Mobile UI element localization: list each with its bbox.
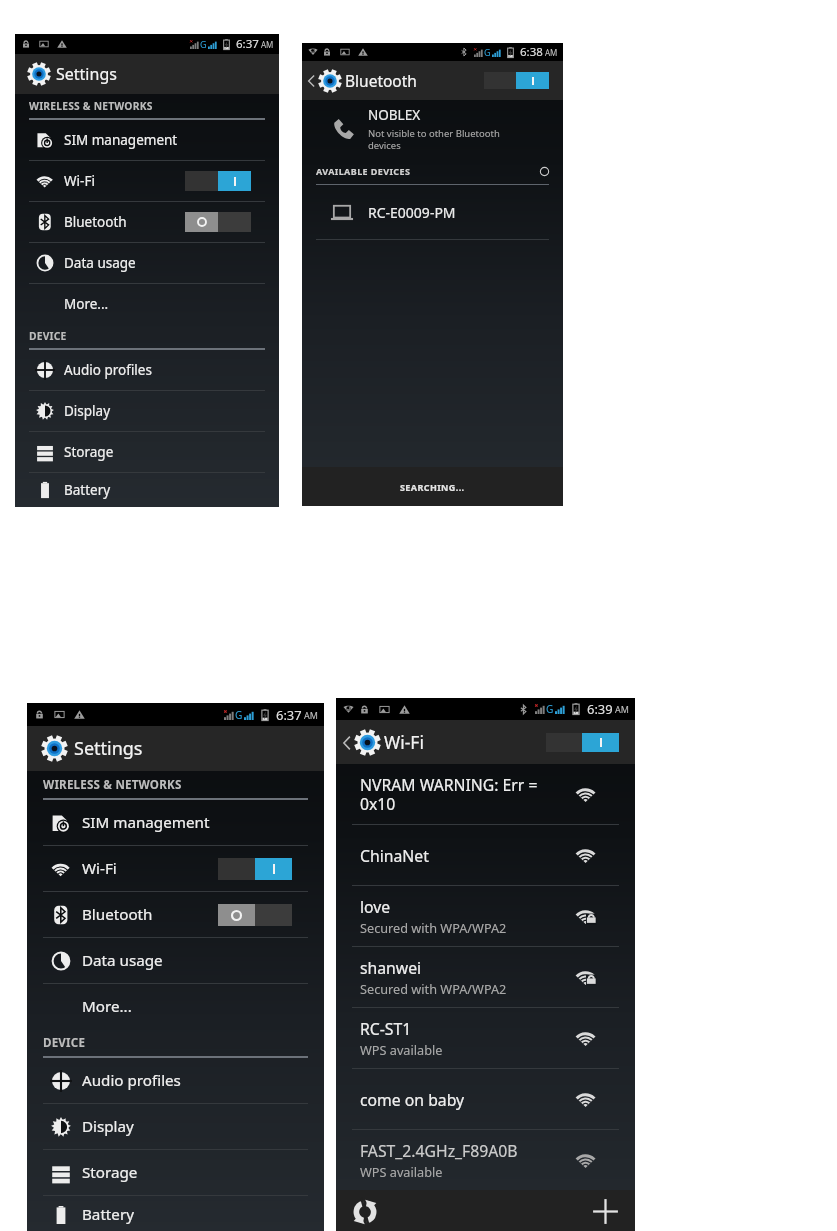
staticText: Not visible to other Bluetooth devices <box>368 127 500 152</box>
button[interactable]: Bluetooth off <box>185 212 251 232</box>
staticText: come on baby <box>360 1089 465 1110</box>
button[interactable]: Settings <box>27 54 279 94</box>
button[interactable]: FAST_2.4GHz_F89A0B <box>360 1130 597 1190</box>
button[interactable]: Audio profiles <box>27 1058 324 1103</box>
button[interactable]: shanwei <box>360 947 597 1007</box>
staticText: G <box>546 702 554 716</box>
staticText: G <box>235 708 243 722</box>
staticText: Wi-Fi <box>384 730 424 754</box>
button[interactable]: RC-ST1 <box>360 1008 597 1068</box>
staticText: Audio profiles <box>82 1070 181 1091</box>
staticText: Data usage <box>82 950 163 971</box>
button[interactable]: Wi-Fi toggle <box>546 733 619 752</box>
button[interactable]: Settings <box>41 726 324 771</box>
staticText: Audio profiles <box>64 361 152 379</box>
staticText: shanwei <box>360 957 422 978</box>
button[interactable]: Bluetooth <box>15 202 279 242</box>
staticText: SIM management <box>64 131 178 149</box>
staticText: ChinaNet <box>360 845 429 866</box>
staticText: G <box>200 38 207 50</box>
staticText: SIM management <box>82 812 210 833</box>
staticText: Battery <box>64 481 111 499</box>
staticText: WIRELESS & NETWORKS <box>29 99 153 113</box>
button[interactable]: NOBLEX <box>302 100 563 158</box>
staticText: 6:39 <box>587 700 613 718</box>
staticText: Display <box>82 1116 134 1137</box>
button[interactable]: Data usage <box>15 243 279 283</box>
staticText: More... <box>64 295 109 313</box>
button[interactable]: Back <box>306 69 342 93</box>
button[interactable]: Refresh device list <box>540 167 549 176</box>
staticText: NVRAM WARNING: Err = 0x10 <box>360 774 538 815</box>
button[interactable]: Display <box>15 391 279 431</box>
staticText: Storage <box>64 443 114 461</box>
staticText: Battery <box>82 1204 134 1225</box>
button[interactable]: SIM management <box>27 800 324 845</box>
button[interactable]: love <box>360 886 597 946</box>
button[interactable]: Battery <box>15 473 279 507</box>
staticText: RC-ST1 <box>360 1018 412 1039</box>
staticText: 6:38 <box>520 44 543 60</box>
button[interactable]: WPS push button <box>351 1198 379 1226</box>
button[interactable]: Wi-Fi on <box>185 171 251 191</box>
button[interactable]: ChinaNet <box>360 825 597 885</box>
button[interactable]: Storage <box>15 432 279 472</box>
staticText: AM <box>615 703 629 715</box>
staticText: Secured with WPA/WPA2 <box>360 919 507 936</box>
staticText: Wi-Fi <box>64 172 95 190</box>
button[interactable]: Display <box>27 1104 324 1149</box>
button[interactable]: Battery <box>27 1196 324 1231</box>
staticText: FAST_2.4GHz_F89A0B <box>360 1140 518 1161</box>
staticText: Data usage <box>64 254 136 272</box>
button[interactable]: Storage <box>27 1150 324 1195</box>
staticText: NOBLEX <box>368 106 421 124</box>
staticText: AM <box>261 39 274 50</box>
staticText: DEVICE <box>43 1035 86 1051</box>
button[interactable]: Back <box>341 729 381 756</box>
staticText: G <box>484 46 491 58</box>
staticText: Settings <box>56 63 117 85</box>
staticText: 6:37 <box>236 36 259 52</box>
button[interactable]: Wi-Fi <box>15 161 279 201</box>
staticText: love <box>360 896 391 917</box>
button[interactable]: Wi-Fi on <box>218 858 292 880</box>
staticText: AVAILABLE DEVICES <box>316 165 411 177</box>
staticText: SEARCHING... <box>400 481 465 493</box>
button[interactable]: More... <box>27 984 324 1029</box>
button[interactable]: RC-E0009-PM <box>302 185 563 239</box>
staticText: WIRELESS & NETWORKS <box>43 777 182 793</box>
button[interactable]: Data usage <box>27 938 324 983</box>
button[interactable]: Audio profiles <box>15 350 279 390</box>
staticText: DEVICE <box>29 329 67 343</box>
button[interactable]: Bluetooth toggle <box>484 72 549 89</box>
staticText: Display <box>64 402 111 420</box>
staticText: Secured with WPA/WPA2 <box>360 980 507 997</box>
staticText: More... <box>82 996 132 1017</box>
staticText: Wi-Fi <box>82 858 117 879</box>
staticText: Bluetooth <box>345 70 417 91</box>
staticText: Bluetooth <box>64 213 127 231</box>
staticText: 6:37 <box>276 706 302 724</box>
button[interactable]: Add network <box>592 1198 619 1225</box>
staticText: AM <box>545 47 558 58</box>
button[interactable]: Wi-Fi <box>27 846 324 891</box>
button[interactable]: Bluetooth off <box>218 904 292 926</box>
button[interactable]: SEARCHING... <box>302 467 563 506</box>
staticText: WPS available <box>360 1041 443 1058</box>
button[interactable]: SIM management <box>15 120 279 160</box>
staticText: Settings <box>74 736 143 761</box>
staticText: AM <box>304 709 318 721</box>
staticText: Bluetooth <box>82 904 153 925</box>
button[interactable]: NVRAM WARNING: Err = 0x10 <box>360 764 597 824</box>
button[interactable]: More... <box>15 284 279 324</box>
staticText: WPS available <box>360 1163 443 1180</box>
button[interactable]: Bluetooth <box>27 892 324 937</box>
staticText: RC-E0009-PM <box>368 203 456 222</box>
button[interactable]: come on baby <box>360 1069 597 1129</box>
staticText: Storage <box>82 1162 138 1183</box>
